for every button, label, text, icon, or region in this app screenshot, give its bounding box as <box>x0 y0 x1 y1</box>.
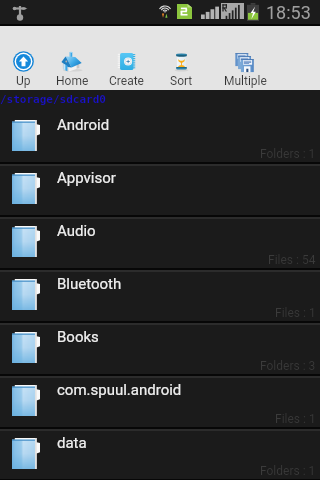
staticText: Sort <box>170 74 193 88</box>
staticText: Home <box>56 74 89 88</box>
button[interactable]: Create <box>98 26 154 90</box>
button[interactable]: data <box>0 428 320 480</box>
staticText: Multiple <box>224 74 267 88</box>
button[interactable]: Up <box>0 26 47 90</box>
button[interactable]: Multiple <box>209 26 282 90</box>
button[interactable]: Home <box>47 26 98 90</box>
staticText: Android <box>57 116 110 134</box>
staticText: Bluetooth <box>57 275 122 293</box>
staticText: 18:53 <box>266 2 311 23</box>
staticText: com.spuul.android <box>57 381 182 399</box>
staticText: Folders : 1 <box>260 464 316 478</box>
staticText: Create <box>109 74 144 88</box>
button[interactable]: Bluetooth <box>0 269 320 322</box>
button[interactable]: Audio <box>0 216 320 269</box>
button[interactable]: com.spuul.android <box>0 375 320 428</box>
staticText: Up <box>16 74 31 88</box>
staticText: /storage/sdcard0 <box>0 93 106 106</box>
staticText: Appvisor <box>57 169 116 187</box>
button[interactable]: Android <box>0 110 320 163</box>
staticText: Files : 54 <box>268 253 316 267</box>
button[interactable]: Books <box>0 322 320 375</box>
staticText: data <box>57 434 87 452</box>
staticText: Folders : 1 <box>260 147 316 161</box>
staticText: Files : 1 <box>275 412 316 426</box>
staticText: Books <box>57 328 99 346</box>
staticText: Folders : 3 <box>260 359 316 373</box>
button[interactable]: Appvisor <box>0 163 320 216</box>
staticText: Audio <box>57 222 96 240</box>
button[interactable]: Sort <box>154 26 209 90</box>
staticText: Files : 1 <box>275 306 316 320</box>
